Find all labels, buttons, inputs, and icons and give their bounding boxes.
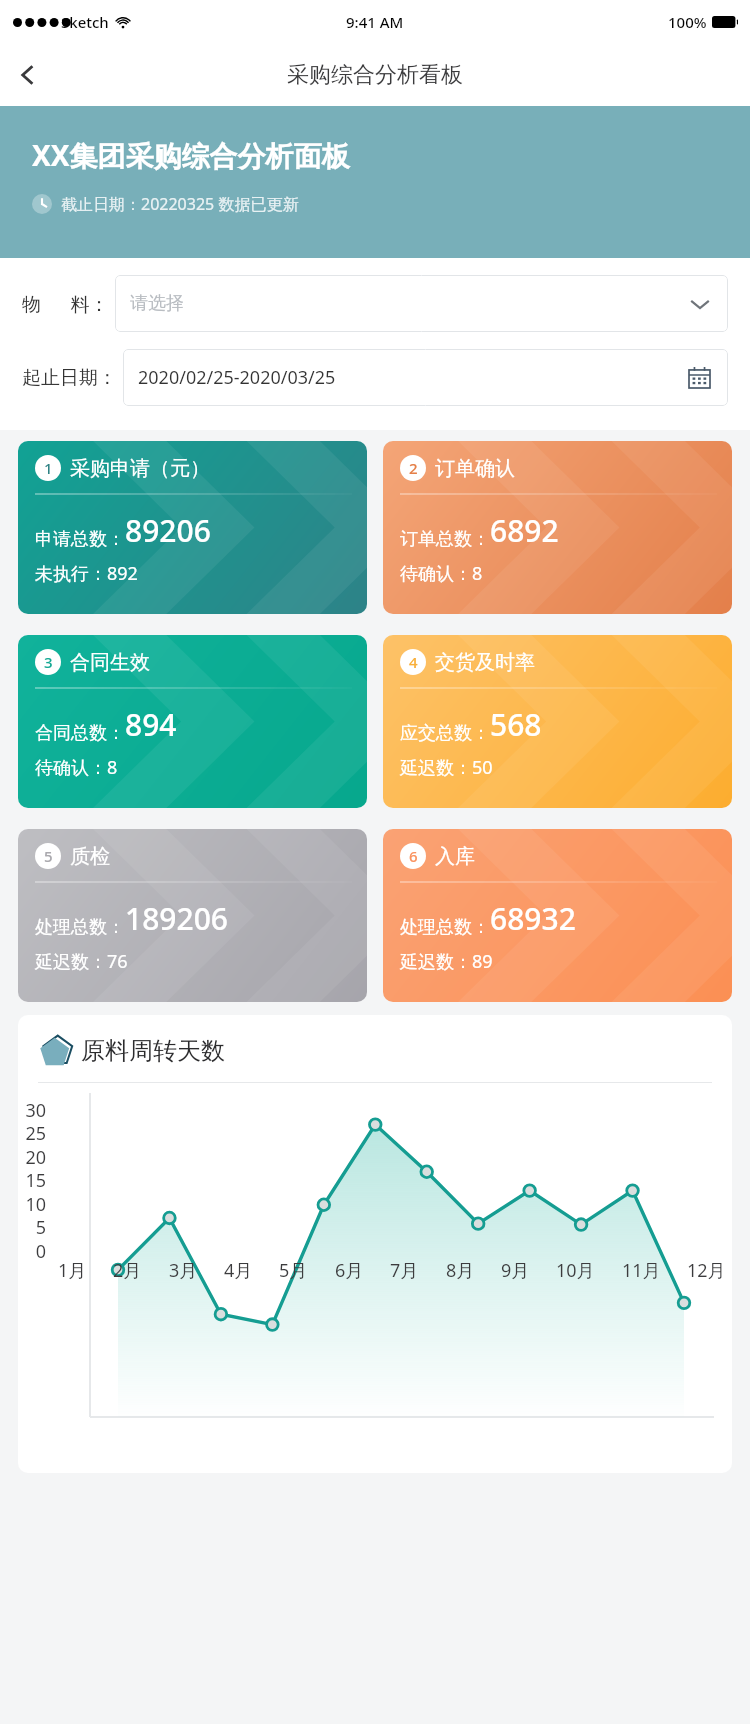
staticText: 10月 bbox=[556, 1258, 595, 1283]
staticText: 合同总数： bbox=[35, 722, 125, 745]
staticText: 68932 bbox=[490, 898, 576, 939]
staticText: 6892 bbox=[490, 510, 559, 551]
staticText: 894 bbox=[125, 704, 177, 745]
button[interactable]: Back bbox=[0, 47, 56, 103]
staticText: 20 bbox=[18, 1145, 46, 1170]
staticText: Sketch bbox=[61, 12, 109, 32]
staticText: 4月 bbox=[224, 1258, 253, 1283]
staticText: 截止日期：20220325 数据已更新 bbox=[61, 193, 299, 215]
staticText: 延迟数：76 bbox=[35, 949, 128, 974]
staticText: 原料周转天数 bbox=[81, 1036, 225, 1066]
staticText: 2月 bbox=[113, 1258, 142, 1283]
staticText: 申请总数： bbox=[35, 528, 125, 551]
button[interactable]: 起止日期： bbox=[22, 349, 728, 406]
button[interactable]: 1 bbox=[18, 441, 367, 614]
staticText: 1月 bbox=[58, 1258, 87, 1283]
staticText: 2 bbox=[409, 458, 418, 478]
staticText: 1 bbox=[44, 458, 53, 478]
staticText: 2020/02/25-2020/03/25 bbox=[138, 365, 336, 390]
staticText: 采购综合分析看板 bbox=[287, 61, 463, 89]
staticText: 订单总数： bbox=[400, 528, 490, 551]
staticText: 3月 bbox=[169, 1258, 198, 1283]
staticText: 入库 bbox=[435, 844, 475, 869]
staticText: 100% bbox=[668, 12, 707, 32]
staticText: 延迟数：89 bbox=[400, 949, 493, 974]
staticText: 6月 bbox=[335, 1258, 364, 1283]
staticText: 9月 bbox=[501, 1258, 530, 1283]
staticText: 合同生效 bbox=[70, 650, 150, 675]
staticText: 待确认：8 bbox=[35, 755, 118, 780]
button[interactable]: 6 bbox=[383, 829, 732, 1002]
staticText: 交货及时率 bbox=[435, 650, 535, 675]
button[interactable]: 3 bbox=[18, 635, 367, 808]
staticText: 起止日期： bbox=[22, 366, 117, 390]
staticText: 10 bbox=[18, 1192, 46, 1217]
staticText: 6 bbox=[409, 846, 418, 866]
staticText: 12月 bbox=[687, 1258, 726, 1283]
staticText: 5 bbox=[18, 1215, 46, 1240]
staticText: 89206 bbox=[125, 510, 211, 551]
staticText: 189206 bbox=[125, 898, 228, 939]
staticText: 9:41 AM bbox=[346, 12, 404, 32]
staticText: 延迟数：50 bbox=[400, 755, 493, 780]
staticText: 未执行：892 bbox=[35, 561, 138, 586]
staticText: 8月 bbox=[446, 1258, 475, 1283]
staticText: 11月 bbox=[622, 1258, 661, 1283]
staticText: 采购申请（元） bbox=[70, 456, 210, 481]
button[interactable]: 4 bbox=[383, 635, 732, 808]
staticText: 质检 bbox=[70, 844, 110, 869]
staticText: 物 料： bbox=[22, 291, 109, 317]
button[interactable]: 物 料： bbox=[22, 275, 728, 332]
staticText: 4 bbox=[409, 652, 418, 672]
staticText: 待确认：8 bbox=[400, 561, 483, 586]
button[interactable]: 5 bbox=[18, 829, 367, 1002]
staticText: 0 bbox=[18, 1239, 46, 1264]
staticText: 处理总数： bbox=[35, 916, 125, 939]
staticText: 7月 bbox=[390, 1258, 419, 1283]
staticText: XX集团采购综合分析面板 bbox=[32, 136, 350, 174]
staticText: 15 bbox=[18, 1168, 46, 1193]
staticText: 25 bbox=[18, 1121, 46, 1146]
staticText: 请选择 bbox=[130, 292, 184, 315]
staticText: 处理总数： bbox=[400, 916, 490, 939]
button[interactable]: 2 bbox=[383, 441, 732, 614]
staticText: 30 bbox=[18, 1098, 46, 1123]
staticText: 3 bbox=[44, 652, 53, 672]
staticText: 5月 bbox=[279, 1258, 308, 1283]
staticText: 应交总数： bbox=[400, 722, 490, 745]
staticText: 568 bbox=[490, 704, 542, 745]
staticText: 5 bbox=[44, 846, 53, 866]
staticText: 订单确认 bbox=[435, 456, 515, 481]
